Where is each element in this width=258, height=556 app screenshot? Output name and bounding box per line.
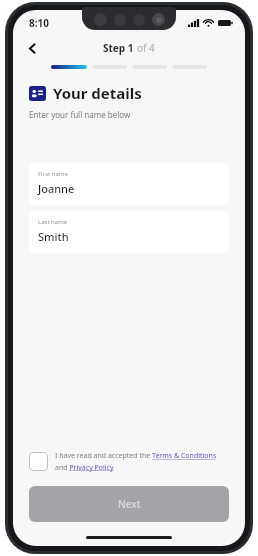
button[interactable]: I have read and accepted the Terms & Con… xyxy=(29,451,229,472)
button[interactable]: Back xyxy=(19,36,45,60)
staticText: Next xyxy=(118,497,141,511)
staticText: Step 1 xyxy=(103,41,134,55)
button[interactable]: Last name xyxy=(29,211,229,253)
staticText: 8:10 xyxy=(29,16,49,30)
staticText: Your details xyxy=(53,83,142,103)
staticText: of 4 xyxy=(137,41,155,55)
button[interactable]: First name xyxy=(29,163,229,205)
staticText: Last name xyxy=(38,218,68,226)
button[interactable]: Next xyxy=(29,486,229,522)
staticText: Joanne xyxy=(38,181,75,196)
staticText: Smith xyxy=(38,229,69,244)
staticText: Enter your full name below xyxy=(29,109,131,120)
staticText: I have read and accepted the Terms & Con… xyxy=(55,451,229,472)
staticText: First name xyxy=(38,170,68,178)
